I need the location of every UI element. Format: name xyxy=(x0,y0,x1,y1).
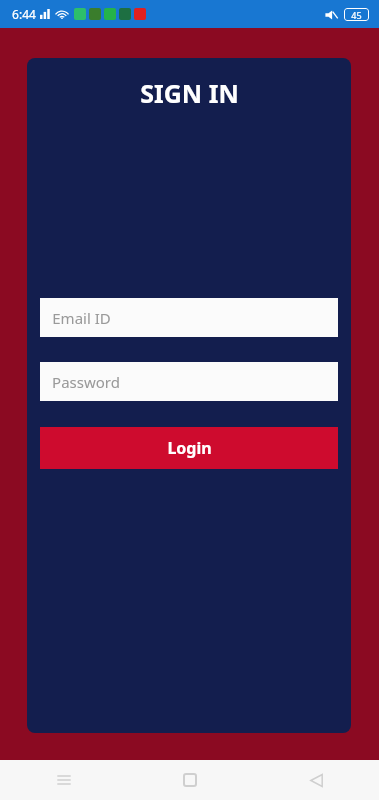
button[interactable]: Recent apps xyxy=(0,760,127,800)
staticText: Login xyxy=(167,437,212,459)
staticText: Email ID xyxy=(52,308,111,328)
staticText: Password xyxy=(52,372,120,392)
button[interactable]: Back xyxy=(253,760,379,800)
staticText: SIGN IN xyxy=(140,76,239,110)
button[interactable]: Home xyxy=(127,760,253,800)
button[interactable]: Login xyxy=(40,427,338,469)
staticText: 6:44 xyxy=(12,6,36,22)
button[interactable]: Email ID xyxy=(40,298,338,337)
button[interactable]: Password xyxy=(40,362,338,401)
staticText: 45 xyxy=(351,9,362,21)
